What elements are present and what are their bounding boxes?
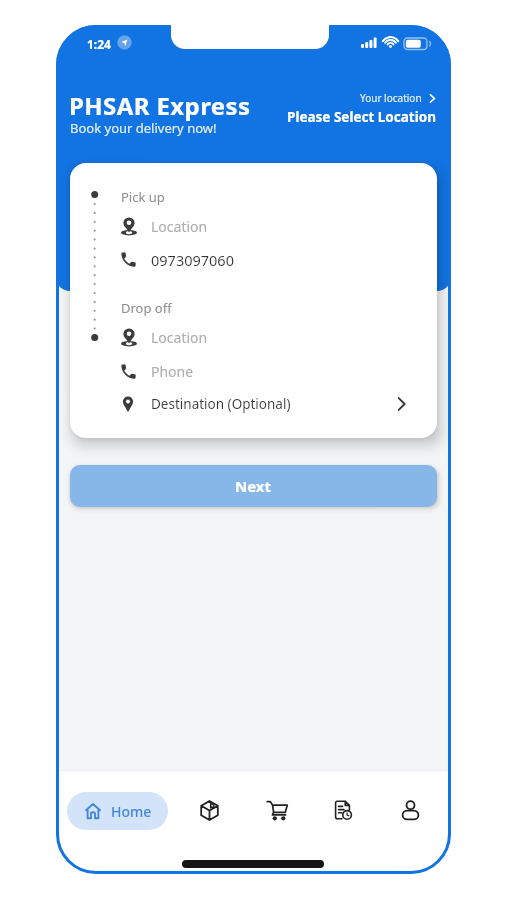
button[interactable]: Location [120,215,430,238]
button[interactable]: Home [67,792,168,830]
button[interactable] [198,799,221,822]
button[interactable]: Your location [56,91,436,126]
staticText: Phone [151,362,194,381]
staticText: Location [151,217,208,236]
button[interactable]: 0973097060 [119,248,429,271]
staticText: Drop off [121,299,172,317]
button[interactable]: Destination (Optional) [121,392,431,416]
staticText: 0973097060 [151,250,234,270]
button[interactable] [399,799,422,822]
staticText: Your location [360,91,422,105]
button[interactable]: Location [120,326,430,349]
staticText: Please Select Location [287,108,436,126]
staticText: Next [235,476,272,496]
button[interactable]: Next [70,465,437,507]
staticText: Book your delivery now! [70,119,217,137]
staticText: Location [151,328,208,347]
staticText: Home [111,802,152,821]
staticText: Pick up [121,188,165,206]
button[interactable] [266,799,289,822]
staticText: Destination (Optional) [151,395,291,413]
staticText: PHSAR Express [69,89,251,122]
button[interactable]: Phone [119,360,429,383]
staticText: 1:24 [87,36,111,52]
button[interactable] [332,799,355,822]
